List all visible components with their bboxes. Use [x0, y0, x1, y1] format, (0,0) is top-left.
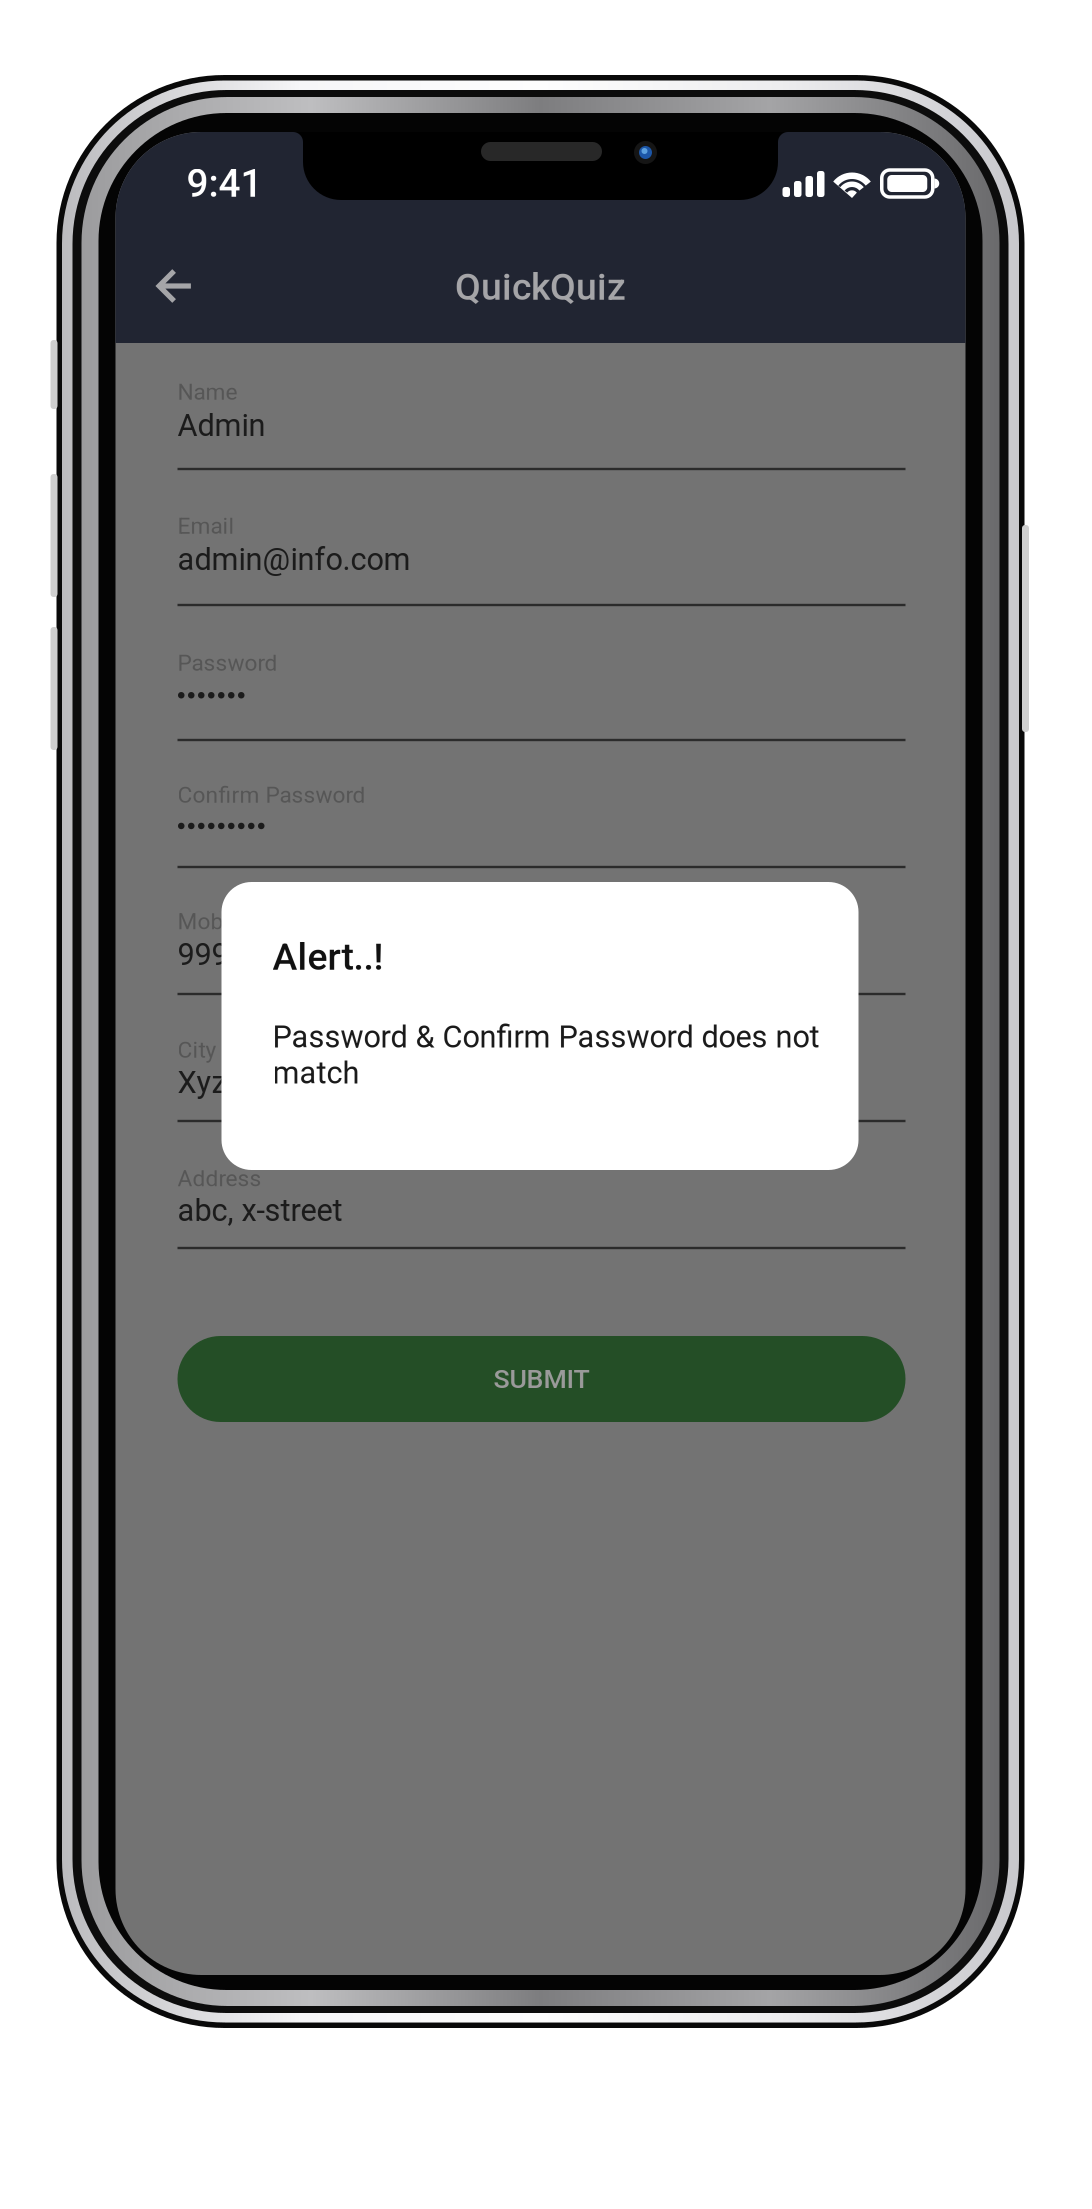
staticText: Xyz [177, 1064, 226, 1100]
staticText: QuickQuiz [455, 265, 626, 309]
button[interactable]: SUBMIT [177, 1336, 905, 1422]
button[interactable]: Back [156, 269, 193, 303]
staticText: Mobile [177, 908, 247, 935]
staticText: Address [177, 1165, 261, 1192]
staticText: Name [177, 379, 237, 405]
staticText: Password [177, 650, 277, 676]
staticText: Confirm Password [177, 782, 365, 808]
staticText: abc, x-street [177, 1192, 342, 1228]
staticText: City [177, 1037, 216, 1063]
staticText: 9999999999 [177, 936, 347, 972]
staticText: Alert..! [272, 935, 383, 979]
staticText: Password & Confirm Password does not [272, 1019, 819, 1055]
staticText: Admin [177, 407, 265, 443]
staticText: 9:41 [186, 161, 262, 206]
staticText: match [272, 1055, 359, 1091]
staticText: SUBMIT [493, 1363, 589, 1395]
staticText: Email [177, 513, 234, 539]
staticText: admin@info.com [177, 541, 410, 577]
